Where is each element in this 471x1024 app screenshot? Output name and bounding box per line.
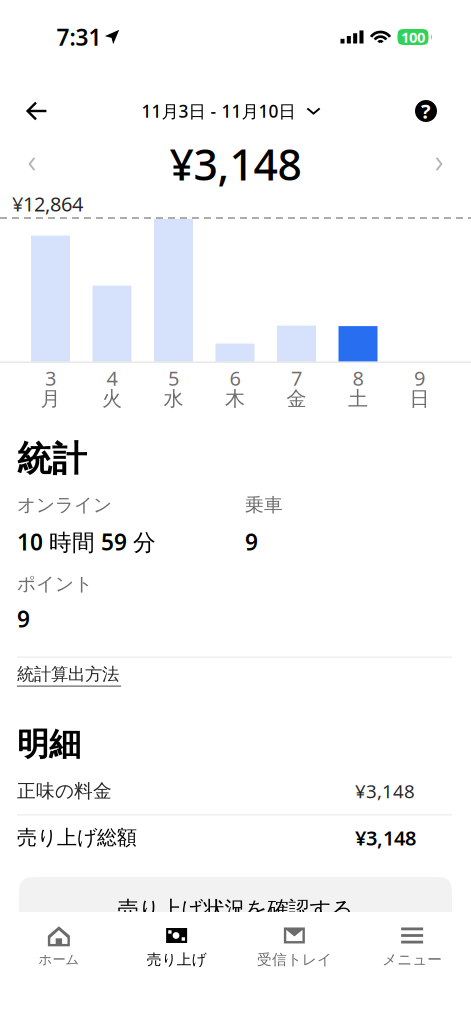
button[interactable]: メニュー xyxy=(353,922,471,970)
staticText: 売り上げ総額 xyxy=(17,825,137,850)
button[interactable]: ホーム xyxy=(0,922,118,970)
staticText: 3 xyxy=(45,365,56,391)
staticText: 9 xyxy=(17,604,30,634)
staticText: 明細 xyxy=(17,725,81,764)
staticText: 100 xyxy=(401,27,425,47)
staticText: 火 xyxy=(102,387,122,411)
staticText: ポイント xyxy=(17,573,93,595)
staticText: 受信トレイ xyxy=(257,950,332,968)
button[interactable]: 受信トレイ xyxy=(235,922,353,970)
staticText: 乗車 xyxy=(245,494,283,516)
button[interactable]: 11月3日 - 11月10日 xyxy=(141,87,320,135)
button[interactable]: Help xyxy=(401,87,471,135)
staticText: 金 xyxy=(286,387,306,411)
button[interactable]: Back xyxy=(0,87,61,135)
button[interactable]: 売り上げ xyxy=(118,922,236,970)
staticText: 11月3日 - 11月10日 xyxy=(141,99,295,122)
staticText: 統計 xyxy=(17,438,87,480)
staticText: ホーム xyxy=(38,951,79,968)
staticText: 月 xyxy=(40,387,60,411)
staticText: ¥3,148 xyxy=(169,136,301,192)
staticText: オンライン xyxy=(17,494,112,516)
staticText: ¥3,148 xyxy=(355,824,416,851)
staticText: 土 xyxy=(348,387,368,411)
button[interactable]: Previous week xyxy=(0,140,64,188)
staticText: 7:31 xyxy=(56,22,101,52)
button[interactable]: 統計算出方法 xyxy=(17,658,121,687)
button[interactable]: Next week xyxy=(407,140,471,188)
staticText: 5 xyxy=(168,365,179,391)
staticText: 統計算出方法 xyxy=(17,664,119,685)
staticText: 日 xyxy=(409,387,429,411)
staticText: 6 xyxy=(229,365,240,391)
staticText: 8 xyxy=(352,365,363,391)
staticText: 売り上げ xyxy=(147,950,207,968)
staticText: 10 時間 59 分 xyxy=(17,527,156,557)
staticText: 木 xyxy=(225,387,245,411)
staticText: 水 xyxy=(163,387,183,411)
staticText: ? xyxy=(421,98,431,124)
staticText: 売り上げ状況を確認する xyxy=(117,896,353,922)
staticText: ¥3,148 xyxy=(355,779,415,803)
staticText: メニュー xyxy=(382,950,442,968)
staticText: 正味の料金 xyxy=(17,779,112,802)
staticText: 4 xyxy=(106,365,117,391)
staticText: 9 xyxy=(414,365,425,391)
staticText: 9 xyxy=(245,527,258,557)
staticText: 7 xyxy=(291,365,302,391)
staticText: ¥12,864 xyxy=(12,190,83,217)
